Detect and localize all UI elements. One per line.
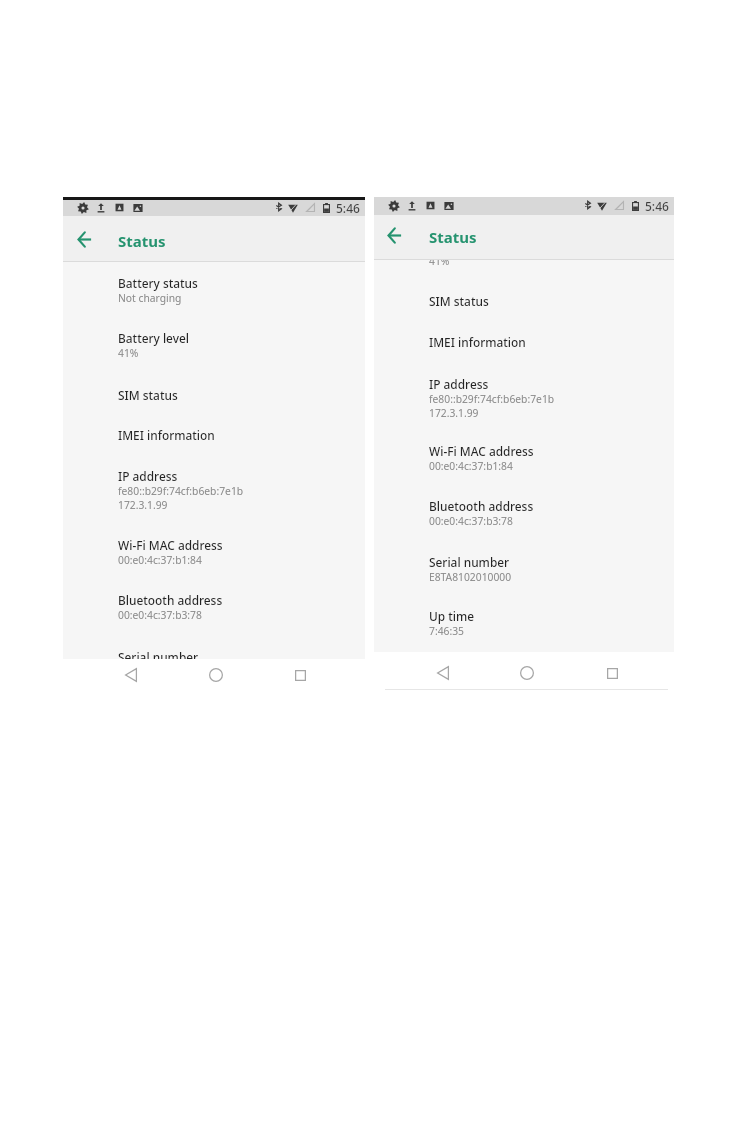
- staticText: IP address: [429, 376, 489, 392]
- button[interactable]: Serial number: [374, 544, 674, 592]
- button[interactable]: Wi-Fi MAC address: [63, 527, 365, 575]
- staticText: Not charging: [118, 291, 182, 305]
- staticText: 41%: [429, 259, 450, 268]
- staticText: Bluetooth address: [429, 498, 534, 514]
- staticText: Wi-Fi MAC address: [429, 443, 534, 459]
- staticText: Status: [118, 231, 166, 251]
- button[interactable]: IMEI information: [374, 324, 674, 358]
- staticText: Up time: [429, 608, 475, 624]
- button[interactable]: Battery level: [63, 320, 365, 368]
- staticText: IP address: [118, 468, 178, 484]
- staticText: 5:46: [645, 198, 669, 214]
- staticText: Battery status: [118, 275, 198, 291]
- button[interactable]: IMEI information: [63, 417, 365, 451]
- staticText: 41%: [118, 346, 139, 360]
- button[interactable]: Home: [204, 663, 228, 687]
- staticText: 00:e0:4c:37:b1:84: [118, 553, 202, 567]
- button[interactable]: Battery status: [63, 265, 365, 313]
- staticText: 00:e0:4c:37:b3:78: [118, 608, 202, 622]
- staticText: fe80::b29f:74cf:b6eb:7e1b: [429, 392, 555, 406]
- button[interactable]: Recents: [600, 661, 624, 685]
- button[interactable]: Bluetooth address: [374, 488, 674, 536]
- staticText: Serial number: [429, 554, 510, 570]
- button[interactable]: Bluetooth address: [63, 582, 365, 630]
- staticText: Wi-Fi MAC address: [118, 537, 223, 553]
- staticText: IMEI information: [118, 427, 215, 443]
- staticText: Battery level: [118, 330, 190, 346]
- staticText: fe80::b29f:74cf:b6eb:7e1b: [118, 484, 244, 498]
- button[interactable]: IP address: [374, 366, 674, 429]
- staticText: 172.3.1.99: [118, 498, 168, 512]
- staticText: SIM status: [118, 387, 178, 403]
- button[interactable]: SIM status: [374, 283, 674, 317]
- button[interactable]: Navigate up: [380, 221, 408, 249]
- staticText: 172.3.1.99: [429, 406, 479, 420]
- button[interactable]: Serial number: [63, 639, 365, 659]
- staticText: Bluetooth address: [118, 592, 223, 608]
- button[interactable]: Home: [515, 661, 539, 685]
- staticText: 7:46:35: [429, 624, 464, 638]
- staticText: Status: [429, 227, 477, 247]
- button[interactable]: Back: [431, 661, 455, 685]
- button[interactable]: IP address: [63, 458, 365, 521]
- button[interactable]: Navigate up: [70, 225, 98, 253]
- button[interactable]: Recents: [288, 663, 312, 687]
- staticText: SIM status: [429, 293, 489, 309]
- button[interactable]: SIM status: [63, 377, 365, 411]
- staticText: 00:e0:4c:37:b1:84: [429, 459, 513, 473]
- button[interactable]: Back: [119, 663, 143, 687]
- staticText: Serial number: [118, 649, 199, 659]
- staticText: E8TA8102010000: [429, 570, 512, 584]
- staticText: 5:46: [336, 200, 360, 216]
- staticText: 00:e0:4c:37:b3:78: [429, 514, 513, 528]
- button[interactable]: Wi-Fi MAC address: [374, 433, 674, 481]
- staticText: IMEI information: [429, 334, 526, 350]
- button[interactable]: Up time: [374, 598, 674, 646]
